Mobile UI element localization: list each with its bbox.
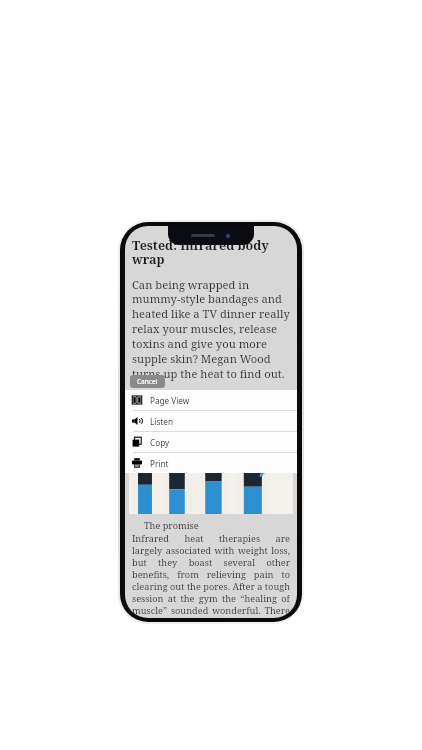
staticText: Can being wrapped in mummy-style bandage… <box>132 277 290 382</box>
button[interactable]: Print <box>125 453 297 473</box>
staticText: Infrared heat therapies are largely asso… <box>132 532 290 618</box>
staticText: Print <box>150 458 169 469</box>
staticText: Copy <box>150 437 170 448</box>
staticText: By Health News Zealand March 26, 2020 1 <box>132 390 260 398</box>
button[interactable]: Page View <box>125 390 297 410</box>
button[interactable]: Cancel <box>130 375 165 388</box>
staticText: Tested: Infrared body wrap <box>132 237 291 268</box>
staticText: Listen <box>150 416 173 427</box>
button[interactable]: Listen <box>125 411 297 431</box>
staticText: The promise <box>132 519 199 532</box>
staticText: Page View <box>150 395 190 406</box>
staticText: Cancel <box>137 377 158 386</box>
button[interactable]: Copy <box>125 432 297 452</box>
